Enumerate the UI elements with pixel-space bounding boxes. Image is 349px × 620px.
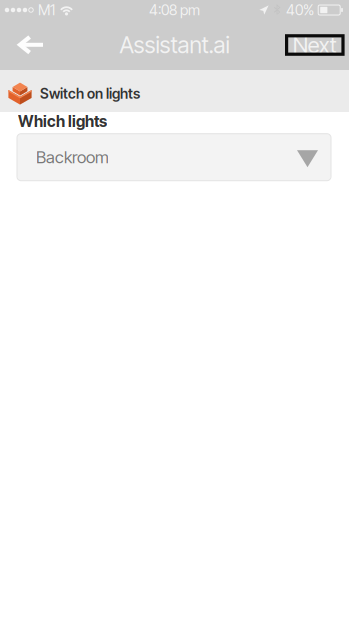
staticText: M1 (38, 1, 55, 19)
staticText: Backroom (36, 147, 109, 167)
staticText: 4:08 pm (149, 1, 200, 19)
staticText: Assistant.ai (119, 31, 229, 59)
button[interactable]: Back (6, 23, 54, 67)
staticText: Switch on lights (40, 85, 140, 102)
button[interactable]: Backroom (17, 134, 331, 181)
button[interactable]: Next (287, 36, 343, 54)
staticText: Which lights (18, 112, 107, 131)
staticText: 40% (286, 1, 314, 19)
staticText: Next (293, 32, 337, 58)
